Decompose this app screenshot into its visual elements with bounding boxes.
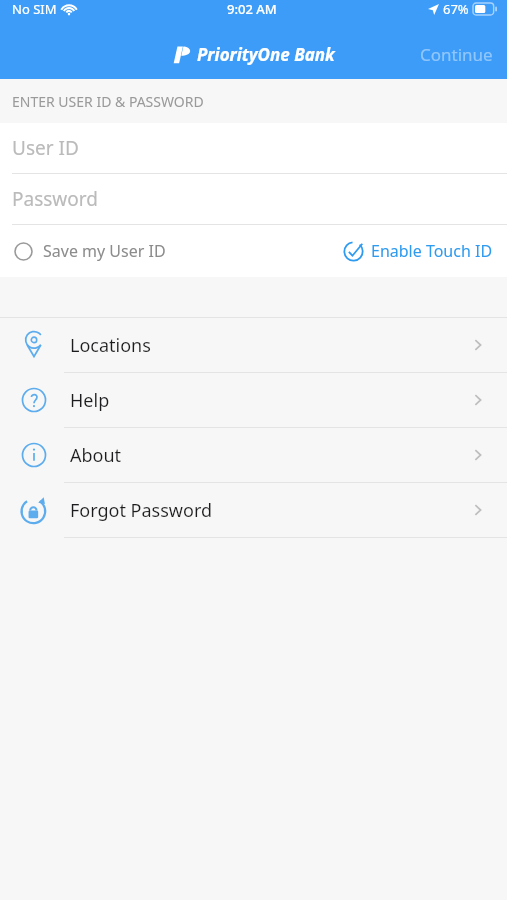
staticText: Help: [70, 388, 110, 413]
staticText: User ID: [12, 135, 79, 161]
button[interactable]: Password: [0, 174, 507, 224]
staticText: Password: [12, 186, 98, 212]
staticText: Enable Touch ID: [371, 240, 493, 262]
staticText: Forgot Password: [70, 498, 213, 523]
staticText: About: [70, 443, 122, 468]
button[interactable]: Help: [0, 373, 507, 427]
staticText: Continue: [420, 43, 493, 66]
staticText: PriorityOne Bank: [197, 43, 335, 66]
button[interactable]: Forgot Password: [0, 483, 507, 537]
button[interactable]: Continue: [406, 33, 507, 76]
staticText: 9:02 AM: [227, 0, 277, 18]
button[interactable]: About: [0, 428, 507, 482]
staticText: 67%: [443, 0, 469, 18]
staticText: ENTER USER ID & PASSWORD: [12, 92, 204, 111]
staticText: No SIM: [12, 0, 57, 18]
staticText: Save my User ID: [43, 240, 166, 262]
button[interactable]: User ID: [0, 123, 507, 173]
button[interactable]: Save my User ID: [0, 232, 174, 270]
button[interactable]: Locations: [0, 318, 507, 372]
staticText: Locations: [70, 333, 151, 358]
button[interactable]: Enable Touch ID: [335, 232, 507, 270]
